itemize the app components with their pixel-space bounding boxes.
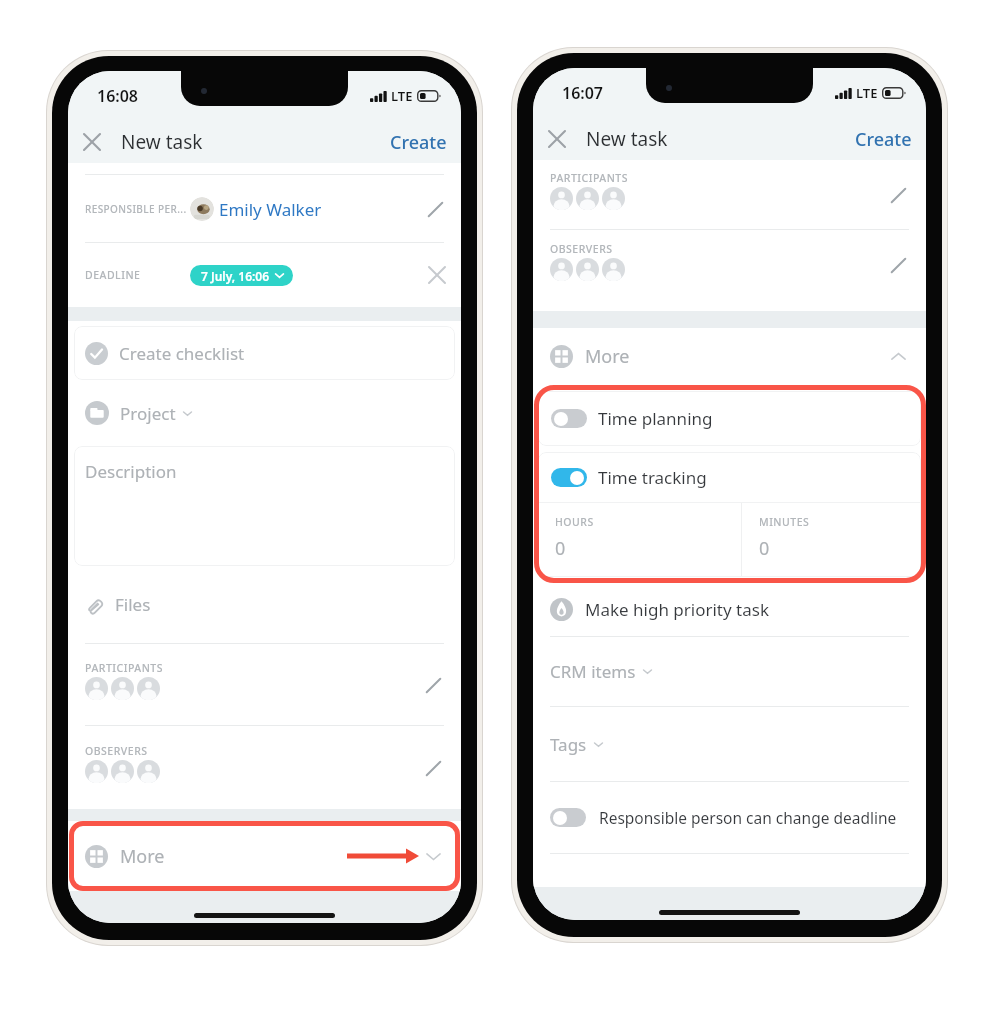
staticText: LTE <box>391 87 413 105</box>
button[interactable]: Create checklist <box>74 326 455 380</box>
button[interactable]: PARTICIPANTS <box>533 160 926 229</box>
button[interactable]: OBSERVERS <box>533 230 926 300</box>
staticText: Time tracking <box>598 466 707 489</box>
button[interactable]: Project <box>68 380 461 446</box>
staticText: More <box>120 844 165 869</box>
button[interactable]: Toggle off <box>533 782 926 853</box>
button[interactable]: Toggle on <box>538 452 921 502</box>
staticText: Emily Walker <box>219 198 322 221</box>
staticText: RESPONSIBLE PER... <box>85 202 187 216</box>
staticText: Time planning <box>598 407 713 430</box>
staticText: Create checklist <box>119 342 245 365</box>
staticText: 0 <box>759 536 770 561</box>
staticText: Project <box>120 402 176 425</box>
staticText: Create <box>855 127 912 152</box>
staticText: DEADLINE <box>85 268 141 282</box>
staticText: PARTICIPANTS <box>550 171 628 185</box>
button[interactable]: Create <box>841 119 926 160</box>
button[interactable]: 7 July, 16:06 <box>190 265 293 286</box>
button[interactable]: Description <box>74 446 455 566</box>
button[interactable]: Create <box>376 122 461 163</box>
staticText: 16:07 <box>562 82 604 104</box>
button[interactable]: Files <box>68 566 461 643</box>
staticText: PARTICIPANTS <box>85 661 163 675</box>
staticText: 0 <box>555 536 566 561</box>
button[interactable]: Edit <box>884 251 912 279</box>
button[interactable]: Toggle on <box>551 468 587 487</box>
staticText: Description <box>85 460 177 483</box>
button[interactable]: More <box>533 328 926 385</box>
staticText: More <box>585 344 630 369</box>
staticText: CRM items <box>550 660 636 683</box>
staticText: Create <box>390 130 447 155</box>
button[interactable]: Edit <box>884 181 912 209</box>
staticText: 16:08 <box>97 85 139 107</box>
button[interactable]: Close <box>76 126 108 158</box>
button[interactable]: CRM items <box>533 637 926 706</box>
button[interactable]: Clear deadline <box>424 262 450 288</box>
staticText: Files <box>115 593 151 616</box>
button[interactable]: Close <box>541 123 573 155</box>
button[interactable]: Toggle off <box>550 808 586 827</box>
staticText: Tags <box>550 733 587 756</box>
button[interactable]: PARTICIPANTS <box>68 644 461 725</box>
staticText: MINUTES <box>759 515 810 529</box>
staticText: LTE <box>856 84 878 102</box>
staticText: OBSERVERS <box>85 744 148 758</box>
staticText: OBSERVERS <box>550 242 613 256</box>
button[interactable]: Make high priority task <box>533 583 926 636</box>
staticText: New task <box>121 129 203 155</box>
button[interactable]: Toggle off <box>551 409 587 428</box>
button[interactable]: DEADLINE <box>68 243 461 307</box>
staticText: HOURS <box>555 515 594 529</box>
button[interactable]: MINUTES <box>742 503 921 577</box>
button[interactable]: Tags <box>533 707 926 781</box>
button[interactable]: Edit <box>421 195 449 223</box>
button[interactable]: OBSERVERS <box>68 726 461 809</box>
staticText: Responsible person can change deadline <box>599 807 897 828</box>
staticText: New task <box>586 126 668 152</box>
button[interactable]: Edit <box>419 671 447 699</box>
button[interactable]: HOURS <box>538 503 741 577</box>
button[interactable]: Toggle off <box>538 391 921 446</box>
button[interactable]: More <box>68 821 461 891</box>
staticText: 7 July, 16:06 <box>201 268 270 284</box>
button[interactable]: RESPONSIBLE PER... <box>68 175 461 242</box>
button[interactable]: Edit <box>419 754 447 782</box>
staticText: Make high priority task <box>585 598 769 621</box>
